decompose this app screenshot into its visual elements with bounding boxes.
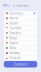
staticText: Spain <box>9 41 18 45</box>
button[interactable]: Menu <box>3 4 10 7</box>
button[interactable]: Brazil <box>4 36 37 40</box>
staticText: Germany <box>9 11 22 15</box>
button[interactable]: Norway <box>4 51 37 55</box>
button[interactable]: Italy <box>4 46 37 50</box>
staticText: Italy <box>9 46 15 50</box>
button[interactable]: Germany <box>4 11 37 16</box>
staticText: Norway <box>9 51 19 55</box>
button[interactable]: Connect <box>4 61 37 67</box>
button[interactable]: Spain <box>4 41 37 45</box>
staticText: Canada <box>9 26 21 30</box>
staticText: Sweden <box>9 31 21 35</box>
staticText: Brazil <box>9 36 17 40</box>
button[interactable]: Japan <box>4 21 37 26</box>
button[interactable]: Canada <box>4 26 37 31</box>
button[interactable]: Sweden <box>4 31 37 35</box>
button[interactable]: Poland <box>4 55 37 60</box>
staticText: Menu <box>3 4 10 7</box>
button[interactable]: France <box>4 16 37 21</box>
staticText: France <box>9 16 18 20</box>
staticText: Connect <box>14 62 27 67</box>
staticText: Japan <box>9 21 18 25</box>
staticText: Poland <box>9 56 20 60</box>
staticText: VPN servers <box>12 4 28 7</box>
